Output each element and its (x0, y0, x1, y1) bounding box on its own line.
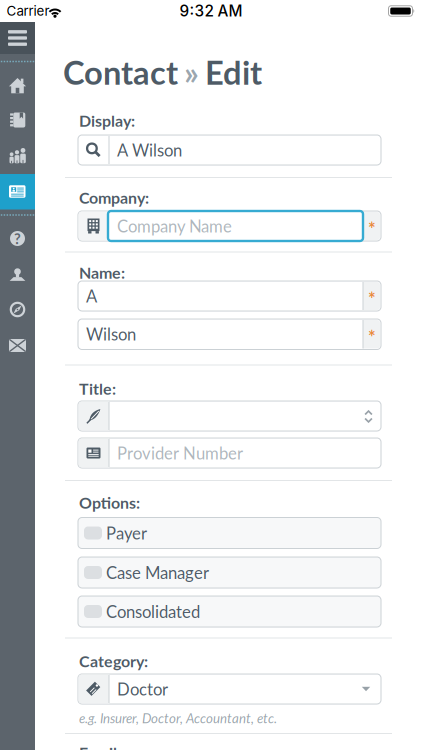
button[interactable]: Contacts (0, 174, 35, 209)
staticText: ? (14, 230, 21, 247)
button[interactable]: Menu (0, 22, 35, 54)
staticText: * (368, 288, 376, 309)
staticText: » (184, 52, 199, 92)
staticText: Payer (106, 523, 147, 543)
button[interactable]: Company Name (108, 211, 363, 241)
staticText: Consolidated (106, 601, 200, 621)
button[interactable]: Consolidated (78, 596, 381, 627)
staticText: e.g. Insurer, Doctor, Accountant, etc. (79, 710, 277, 726)
staticText: Doctor (117, 679, 168, 699)
button[interactable]: Title (78, 401, 381, 431)
button[interactable]: Payer (78, 517, 381, 548)
staticText: A Wilson (117, 140, 182, 160)
button[interactable]: Case Manager (78, 557, 381, 588)
button[interactable]: Messages (0, 328, 35, 362)
staticText: Case Manager (106, 562, 209, 582)
staticText: Company: (79, 188, 149, 207)
staticText: Edit (205, 52, 262, 92)
staticText: Company Name (117, 216, 232, 236)
staticText: Carrier (6, 3, 49, 19)
staticText: Contact (63, 52, 178, 92)
button[interactable]: Explore (0, 292, 35, 326)
staticText: Options: (79, 493, 140, 512)
staticText: Email: (79, 743, 121, 750)
button[interactable]: Home (0, 68, 35, 102)
button[interactable]: Account (0, 257, 35, 291)
button[interactable]: Appointment Book (0, 103, 35, 137)
staticText: Title: (79, 379, 116, 398)
staticText: Name: (79, 263, 125, 282)
staticText: A (86, 286, 97, 306)
staticText: * (368, 218, 376, 239)
button[interactable]: Category (78, 674, 381, 704)
staticText: Display: (79, 111, 135, 130)
staticText: 9:32 AM (179, 2, 242, 20)
staticText: Provider Number (117, 443, 243, 463)
button[interactable]: Patients (0, 139, 35, 173)
button[interactable]: Help (0, 222, 35, 254)
staticText: Wilson (86, 324, 136, 344)
staticText: * (368, 326, 376, 348)
staticText: Category: (79, 651, 148, 671)
